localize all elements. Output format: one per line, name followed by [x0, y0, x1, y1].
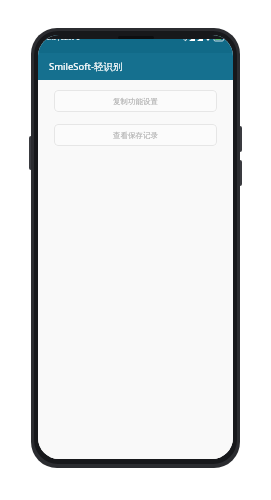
button[interactable]: 复制功能设置: [54, 90, 217, 112]
button[interactable]: 查看保存记录: [54, 124, 217, 146]
staticText: 复制功能设置: [113, 97, 158, 106]
staticText: 查看保存记录: [113, 131, 158, 140]
staticText: 0:10 | 0.2K/s: [47, 35, 74, 41]
staticText: SmileSoft-轻识别: [49, 60, 123, 73]
